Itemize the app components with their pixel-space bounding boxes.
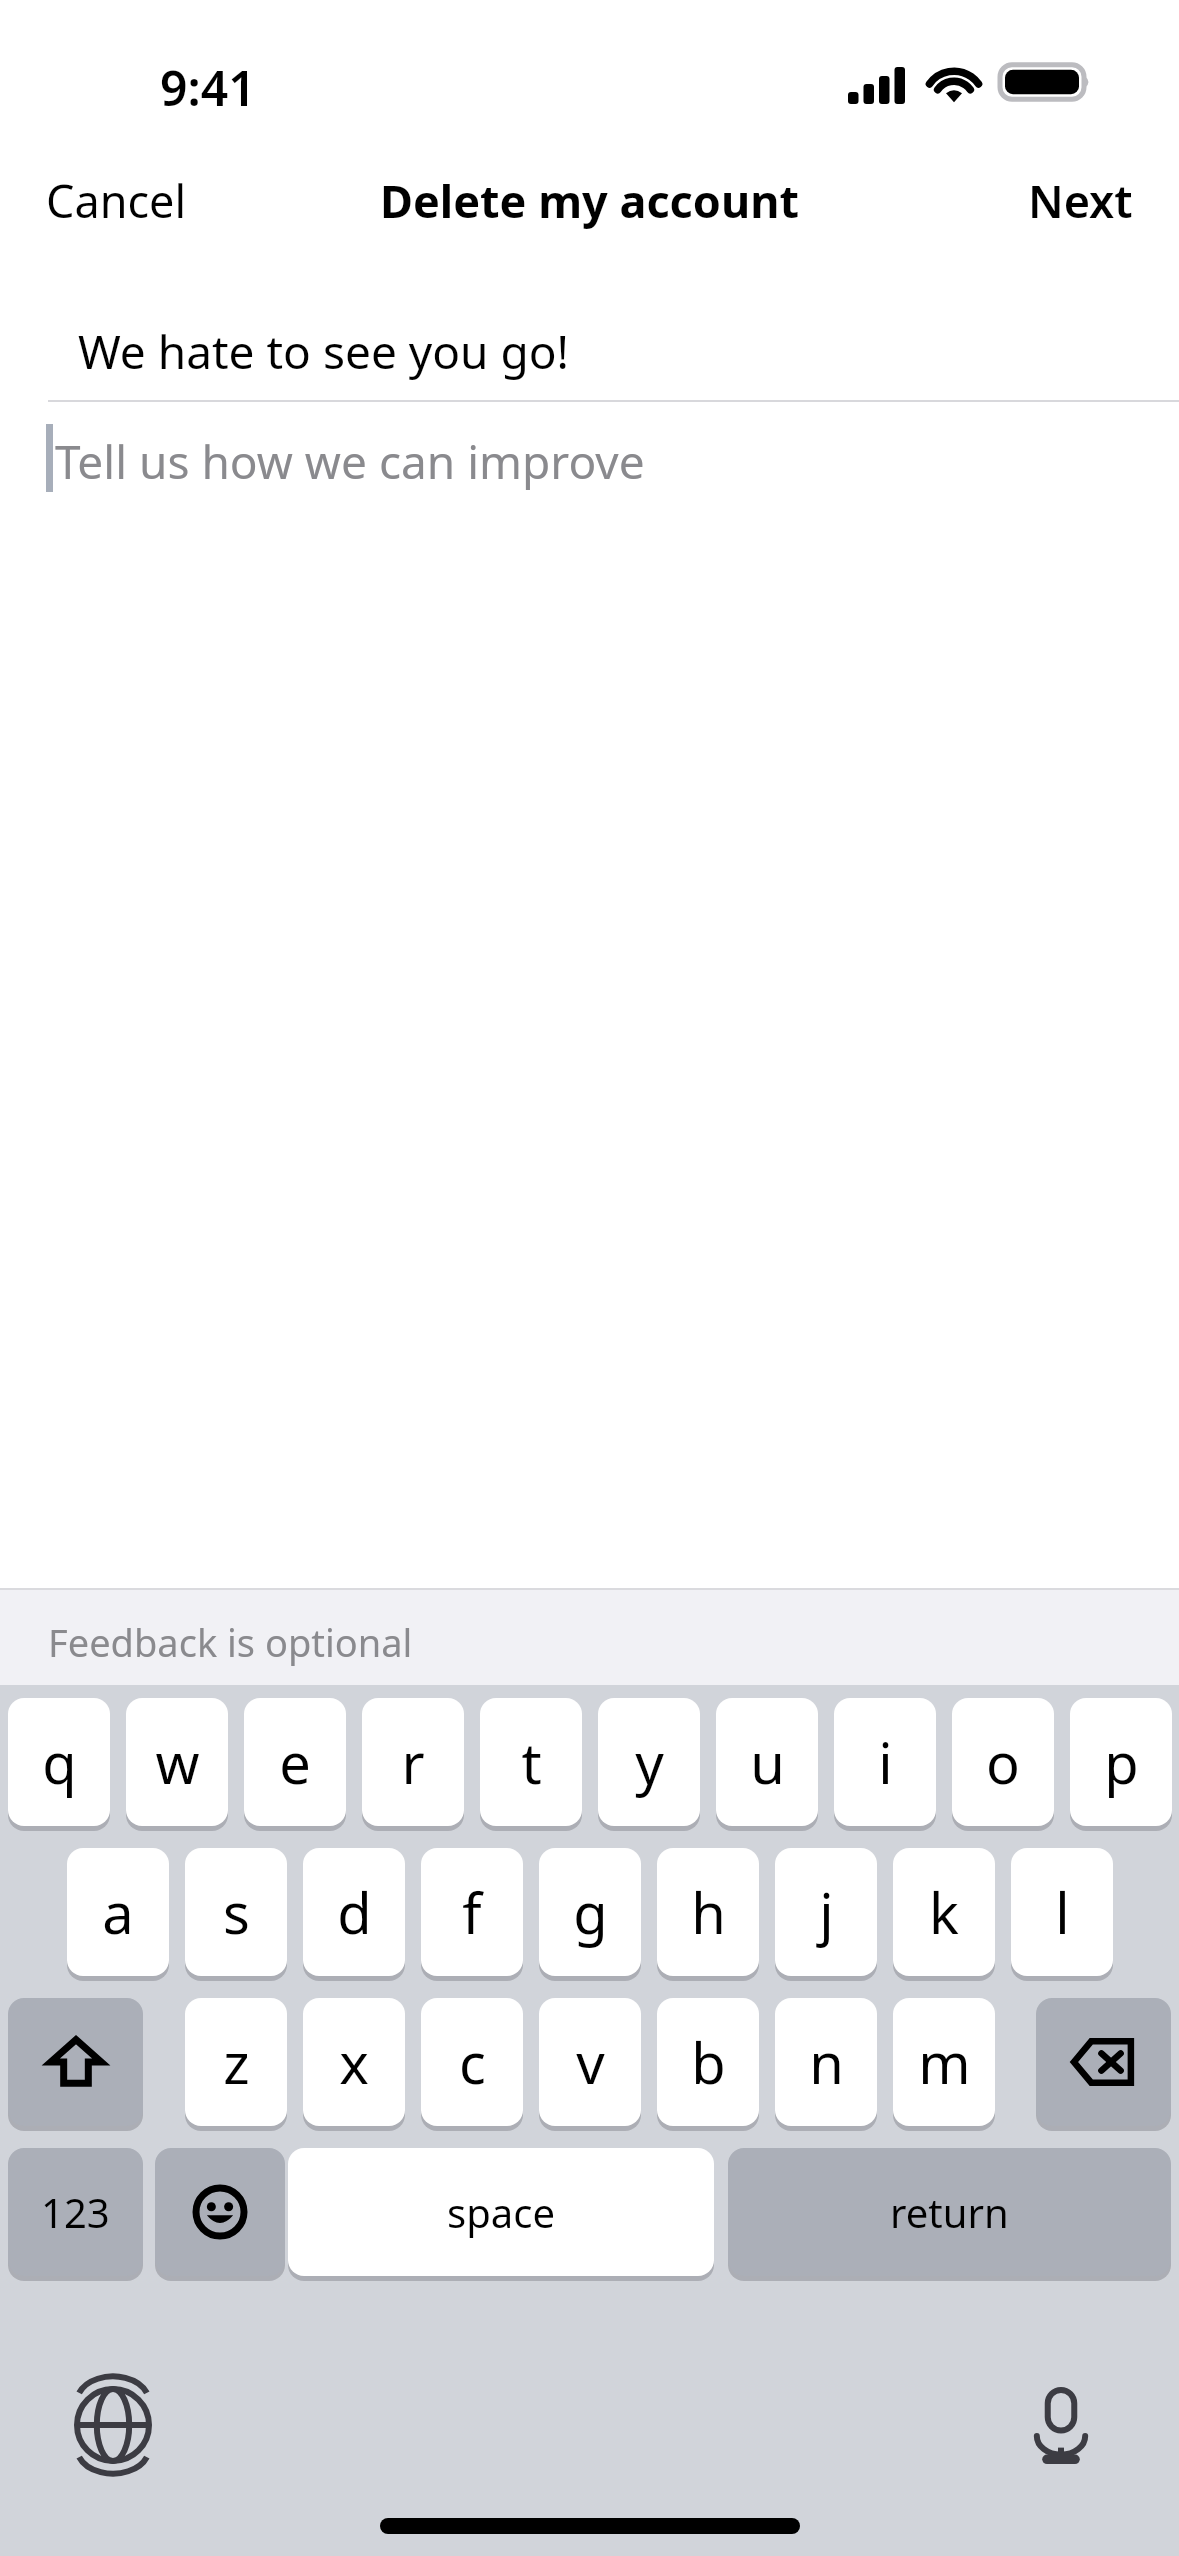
button[interactable]: b: [657, 1998, 759, 2126]
staticText: Feedback is optional: [48, 1616, 413, 1668]
staticText: z: [223, 2024, 250, 2100]
button[interactable]: Backspace: [1036, 1998, 1171, 2126]
button[interactable]: 123: [8, 2148, 143, 2276]
button[interactable]: l: [1011, 1848, 1113, 1976]
staticText: h: [691, 1874, 726, 1950]
button[interactable]: Dictate: [1006, 2370, 1116, 2480]
button[interactable]: Next: [1012, 156, 1149, 245]
staticText: space: [447, 2185, 555, 2239]
button[interactable]: z: [185, 1998, 287, 2126]
button[interactable]: c: [421, 1998, 523, 2126]
staticText: u: [750, 1724, 785, 1800]
staticText: g: [573, 1874, 608, 1950]
button[interactable]: Shift: [8, 1998, 143, 2126]
button[interactable]: return: [728, 2148, 1171, 2276]
staticText: j: [819, 1874, 834, 1950]
staticText: n: [809, 2024, 844, 2100]
button[interactable]: y: [598, 1698, 700, 1826]
staticText: q: [42, 1724, 77, 1800]
button[interactable]: space: [288, 2148, 714, 2276]
staticText: b: [691, 2024, 726, 2100]
staticText: m: [918, 2024, 971, 2100]
staticText: o: [986, 1724, 1020, 1800]
button[interactable]: v: [539, 1998, 641, 2126]
staticText: Delete my account: [380, 170, 799, 231]
staticText: v: [576, 2024, 605, 2100]
staticText: Cancel: [46, 170, 187, 231]
staticText: a: [102, 1874, 134, 1950]
button[interactable]: m: [893, 1998, 995, 2126]
button[interactable]: Switch keyboard language: [58, 2370, 168, 2480]
button[interactable]: i: [834, 1698, 936, 1826]
button[interactable]: f: [421, 1848, 523, 1976]
button[interactable]: Cancel: [30, 156, 203, 245]
button[interactable]: a: [67, 1848, 169, 1976]
button[interactable]: e: [244, 1698, 346, 1826]
button[interactable]: j: [775, 1848, 877, 1976]
staticText: k: [929, 1874, 959, 1950]
button[interactable]: p: [1070, 1698, 1172, 1826]
button[interactable]: t: [480, 1698, 582, 1826]
staticText: p: [1104, 1724, 1139, 1800]
button[interactable]: o: [952, 1698, 1054, 1826]
button[interactable]: u: [716, 1698, 818, 1826]
button[interactable]: h: [657, 1848, 759, 1976]
button[interactable]: k: [893, 1848, 995, 1976]
button[interactable]: d: [303, 1848, 405, 1976]
button[interactable]: w: [126, 1698, 228, 1826]
button[interactable]: q: [8, 1698, 110, 1826]
staticText: Tell us how we can improve: [55, 430, 645, 493]
staticText: return: [890, 2185, 1009, 2239]
button[interactable]: r: [362, 1698, 464, 1826]
staticText: x: [339, 2024, 369, 2100]
staticText: 123: [41, 2185, 110, 2239]
staticText: w: [155, 1724, 200, 1800]
staticText: Next: [1028, 170, 1133, 231]
button[interactable]: Emoji: [155, 2148, 285, 2276]
staticText: s: [223, 1874, 250, 1950]
staticText: 9:41: [160, 55, 256, 120]
staticText: d: [337, 1874, 372, 1950]
staticText: f: [462, 1874, 482, 1950]
staticText: l: [1055, 1874, 1070, 1950]
staticText: We hate to see you go!: [78, 320, 569, 383]
staticText: y: [635, 1724, 664, 1800]
staticText: t: [521, 1724, 542, 1800]
staticText: c: [459, 2024, 486, 2100]
button[interactable]: s: [185, 1848, 287, 1976]
staticText: r: [401, 1724, 425, 1800]
button[interactable]: g: [539, 1848, 641, 1976]
button[interactable]: n: [775, 1998, 877, 2126]
staticText: i: [878, 1724, 893, 1800]
staticText: e: [279, 1724, 311, 1800]
button[interactable]: x: [303, 1998, 405, 2126]
